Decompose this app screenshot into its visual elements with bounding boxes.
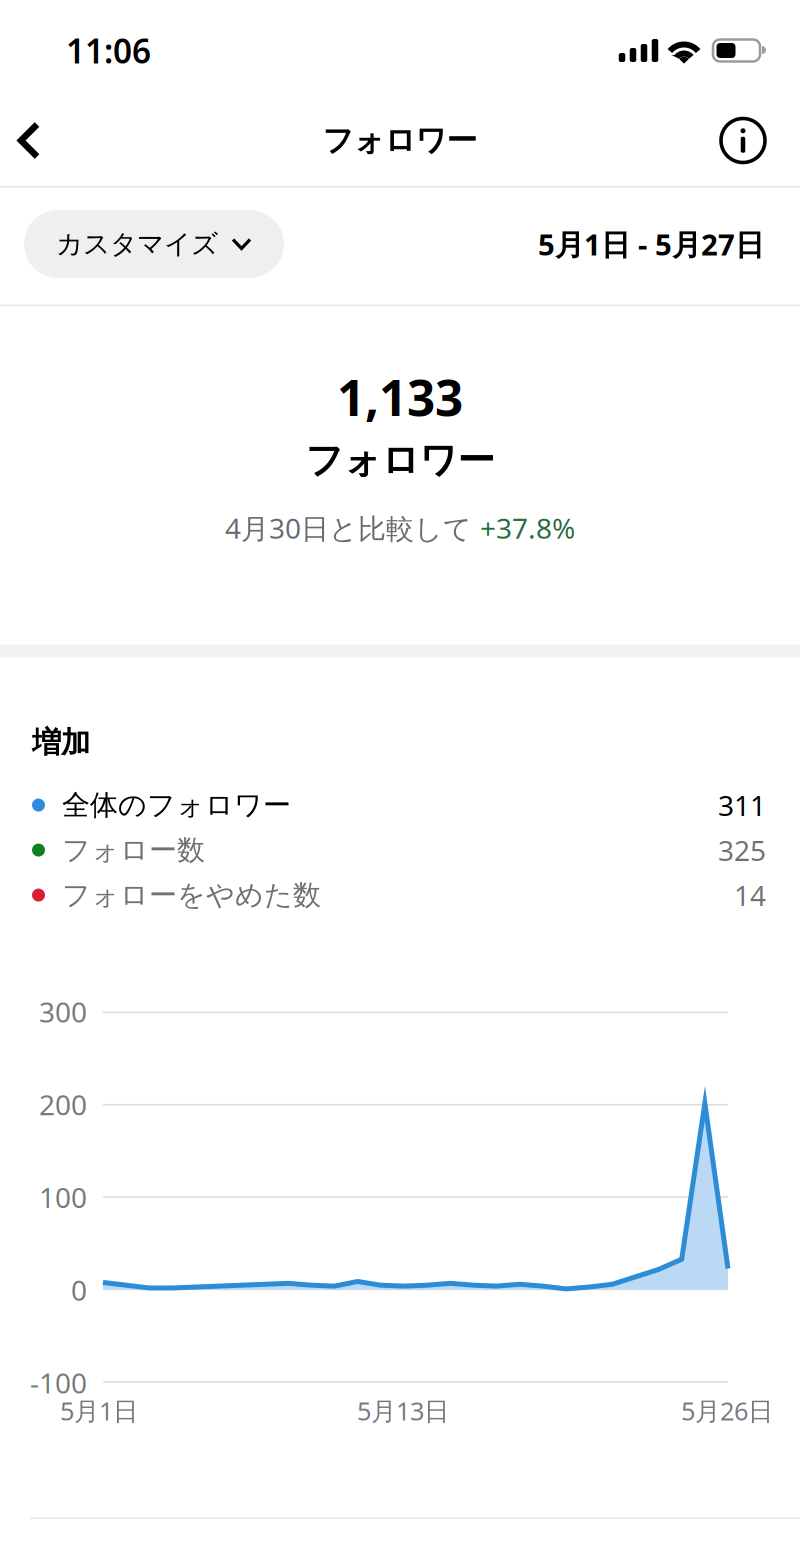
staticText: フォロワー	[322, 122, 477, 159]
staticText: 5月26日	[681, 1394, 773, 1427]
staticText: フォロー数	[62, 833, 205, 867]
staticText: 4月30日と比較して	[225, 509, 480, 547]
staticText: フォローをやめた数	[62, 878, 321, 912]
staticText: 325	[718, 831, 766, 869]
staticText: 300	[39, 993, 87, 1030]
staticText: 311	[718, 786, 766, 824]
button[interactable]: Information	[714, 109, 772, 171]
staticText: 100	[39, 1178, 87, 1216]
staticText: 増加	[32, 724, 90, 760]
staticText: 11:06	[66, 28, 151, 73]
staticText: フォロワー	[305, 437, 494, 483]
staticText: カスタマイズ	[56, 228, 218, 260]
button[interactable]: カスタマイズ	[24, 210, 284, 278]
staticText: -100	[30, 1364, 87, 1401]
button[interactable]: Back	[0, 109, 58, 171]
staticText: 5月1日	[60, 1394, 138, 1427]
staticText: 5月13日	[357, 1394, 449, 1427]
staticText: 5月1日 - 5月27日	[538, 224, 764, 263]
staticText: 1,133	[337, 364, 463, 429]
staticText: 14	[734, 876, 766, 914]
staticText: 全体のフォロワー	[62, 788, 291, 822]
staticText: 200	[39, 1086, 87, 1123]
staticText: 0	[71, 1271, 87, 1308]
staticText: +37.8%	[480, 509, 575, 547]
